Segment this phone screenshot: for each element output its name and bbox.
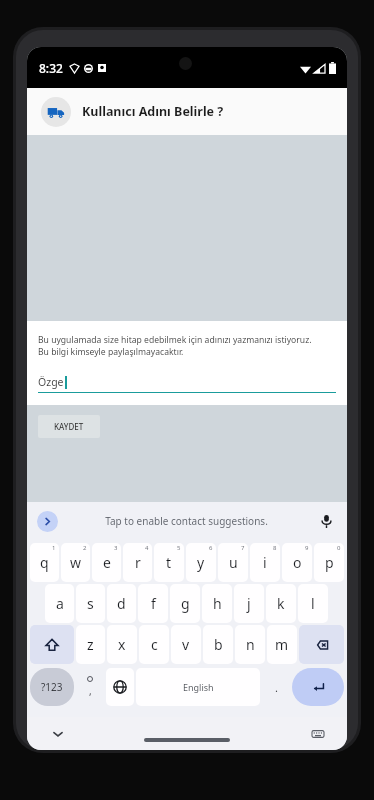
staticText: .	[275, 680, 278, 695]
staticText: k	[277, 594, 285, 613]
staticText: English	[183, 681, 214, 693]
button[interactable]: p	[314, 543, 344, 582]
button[interactable]: Shift	[30, 625, 74, 664]
button[interactable]: f	[138, 584, 168, 623]
staticText: d	[117, 594, 126, 613]
button[interactable]: w	[61, 543, 90, 582]
button[interactable]: b	[203, 625, 233, 664]
staticText: x	[118, 635, 126, 654]
button[interactable]: Expand suggestions	[37, 511, 58, 532]
staticText: 8:32	[39, 60, 63, 76]
staticText: v	[182, 635, 190, 654]
staticText: a	[56, 594, 64, 613]
button[interactable]: h	[202, 584, 232, 623]
staticText: i	[263, 553, 267, 572]
button[interactable]: Enter	[292, 668, 344, 706]
button[interactable]: v	[171, 625, 201, 664]
staticText: c	[151, 635, 158, 654]
button[interactable]: Backspace	[299, 625, 344, 664]
staticText: l	[311, 594, 315, 613]
staticText: 4	[145, 544, 149, 552]
staticText: 7	[241, 544, 245, 552]
staticText: f	[151, 594, 156, 613]
button[interactable]: y	[186, 543, 216, 582]
staticText: e	[103, 553, 111, 572]
button[interactable]: u	[218, 543, 248, 582]
staticText: q	[40, 553, 49, 572]
staticText: t	[166, 553, 172, 572]
staticText: 3	[114, 544, 118, 552]
button[interactable]: j	[234, 584, 264, 623]
button[interactable]: o	[282, 543, 312, 582]
staticText: 6	[209, 544, 213, 552]
button[interactable]: .	[262, 668, 290, 706]
staticText: ,	[89, 684, 92, 698]
staticText: Bu uygulamada size hitap edebilmek için …	[38, 334, 312, 358]
button[interactable]: k	[266, 584, 296, 623]
staticText: 8	[273, 544, 277, 552]
staticText: 1	[52, 544, 56, 552]
button[interactable]: i	[250, 543, 280, 582]
staticText: w	[70, 553, 82, 572]
staticText: p	[325, 553, 334, 572]
staticText: ?123	[41, 680, 63, 694]
staticText: s	[87, 594, 94, 613]
button[interactable]: KAYDET	[38, 415, 100, 438]
staticText: g	[181, 594, 190, 613]
button[interactable]: ?123	[30, 668, 74, 706]
button[interactable]: x	[107, 625, 137, 664]
staticText: Özge	[38, 375, 64, 389]
staticText: n	[246, 635, 255, 654]
button[interactable]: c	[139, 625, 169, 664]
button[interactable]: English	[136, 668, 260, 706]
button[interactable]: e	[92, 543, 121, 582]
button[interactable]: Voice input	[315, 510, 337, 532]
button[interactable]: t	[154, 543, 184, 582]
staticText: 2	[83, 544, 87, 552]
button[interactable]: a	[45, 584, 74, 623]
button[interactable]: q	[30, 543, 59, 582]
button[interactable]: Switch keyboard	[307, 723, 329, 745]
button[interactable]: z	[76, 625, 105, 664]
staticText: Kullanıcı Adını Belirle ?	[82, 103, 224, 120]
button[interactable]: Change language	[106, 668, 134, 706]
staticText: o	[293, 553, 302, 572]
staticText: y	[197, 553, 205, 572]
staticText: 5	[177, 544, 181, 552]
staticText: 9	[305, 544, 309, 552]
button[interactable]: n	[235, 625, 265, 664]
staticText: Tap to enable contact suggestions.	[105, 514, 268, 528]
button[interactable]: d	[107, 584, 136, 623]
staticText: b	[214, 635, 223, 654]
button[interactable]: g	[170, 584, 200, 623]
staticText: KAYDET	[54, 421, 84, 432]
staticText: 0	[337, 544, 341, 552]
button[interactable]: Hide keyboard	[47, 723, 69, 745]
button[interactable]: Özge	[38, 375, 336, 389]
button[interactable]: r	[123, 543, 152, 582]
staticText: u	[229, 553, 238, 572]
staticText: h	[213, 594, 222, 613]
staticText: j	[247, 594, 251, 613]
staticText: m	[275, 635, 289, 654]
button[interactable]: s	[76, 584, 105, 623]
button[interactable]: m	[267, 625, 297, 664]
button[interactable]: Comma and emoji	[76, 668, 104, 706]
staticText: z	[87, 635, 94, 654]
staticText: r	[135, 553, 141, 572]
button[interactable]: l	[298, 584, 328, 623]
